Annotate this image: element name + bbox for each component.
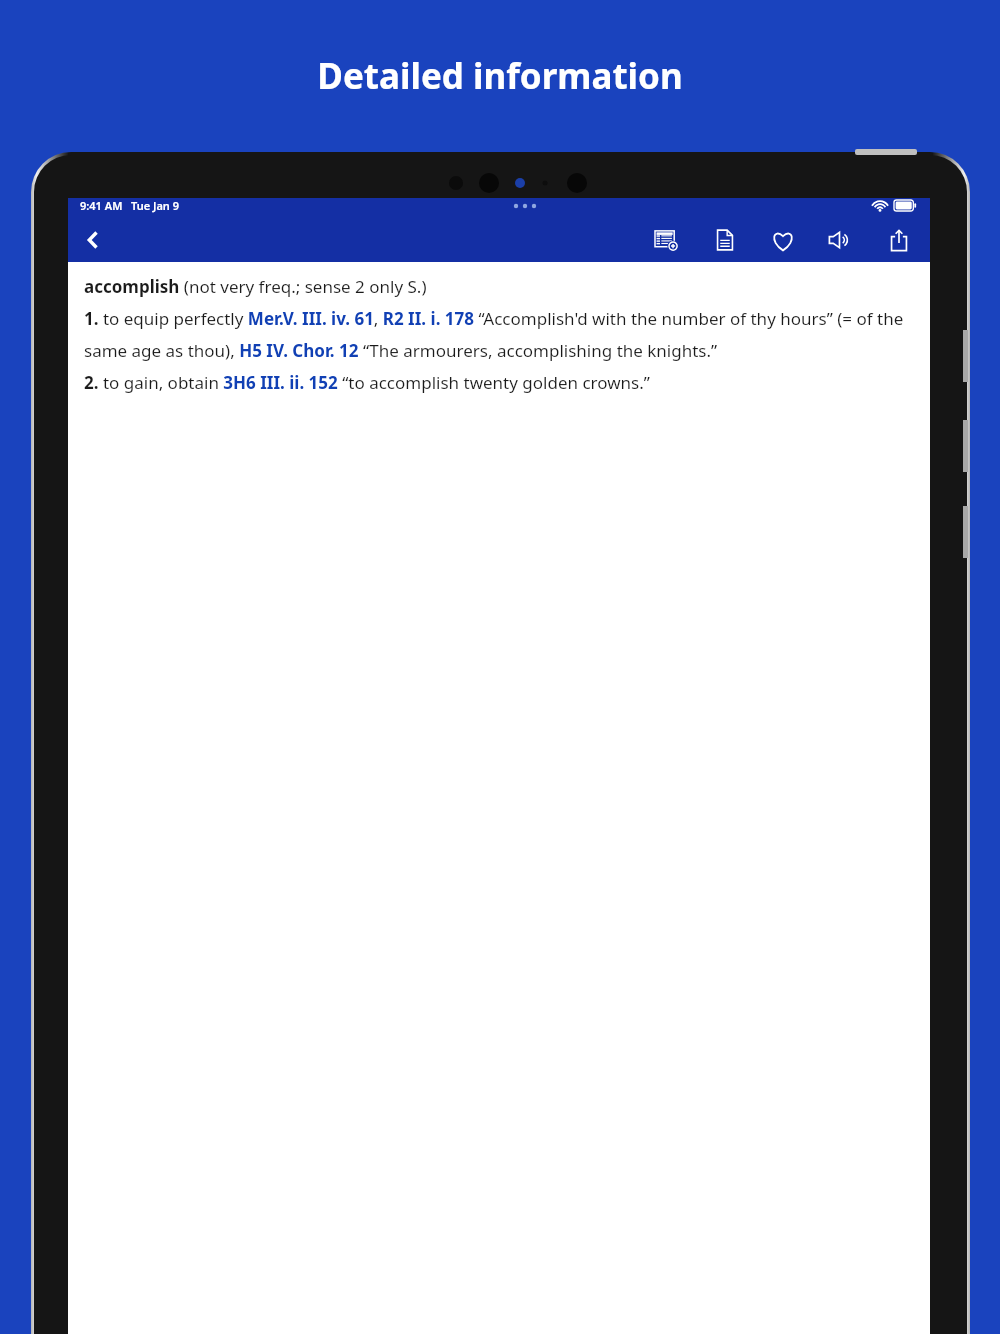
button[interactable]: Add annotation <box>650 223 684 257</box>
button[interactable]: Back <box>72 219 114 261</box>
button[interactable]: Pronounce <box>822 223 856 257</box>
button[interactable]: Document <box>708 223 742 257</box>
staticText: accomplish (not very freq.; sense 2 only… <box>84 275 916 394</box>
button[interactable]: Favorite <box>766 223 800 257</box>
staticText: 9:41 AM Tue Jan 9 <box>80 198 179 213</box>
staticText: Detailed information <box>317 52 683 100</box>
button[interactable]: Share <box>882 223 916 257</box>
